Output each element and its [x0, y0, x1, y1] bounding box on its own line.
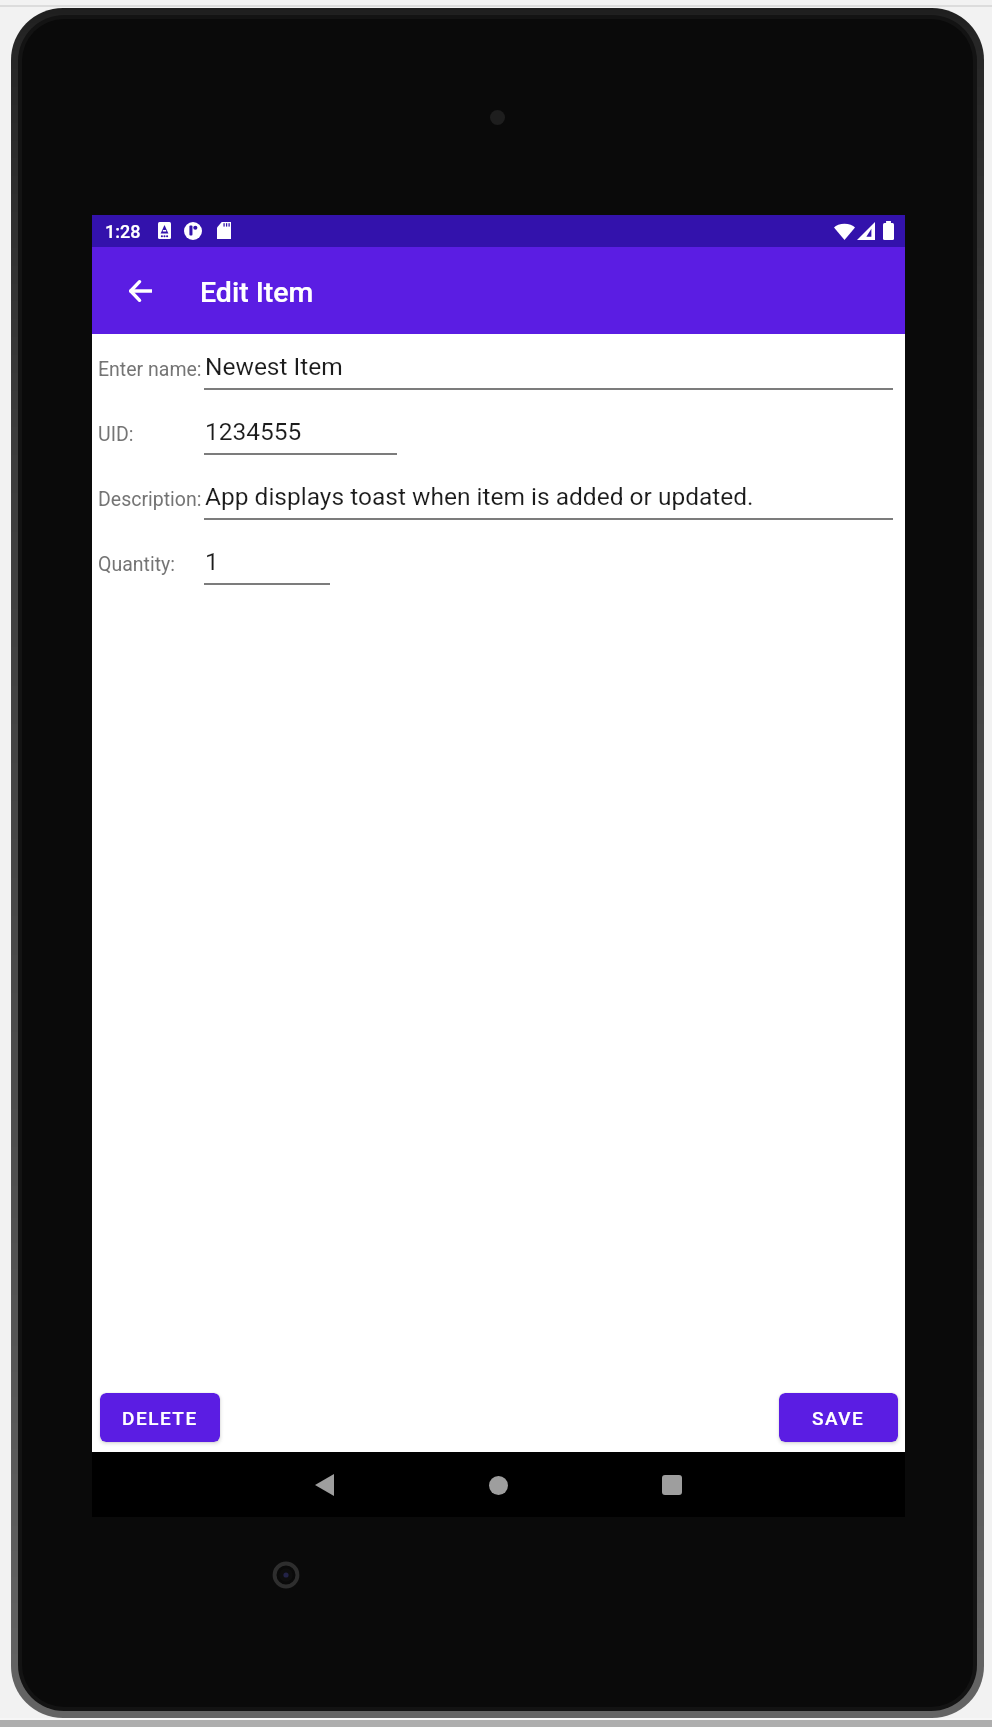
staticText: Description: — [98, 488, 202, 511]
staticText: 1234555 — [205, 417, 302, 446]
button[interactable]: Newest Item — [204, 348, 893, 390]
button[interactable]: Recent apps — [644, 1457, 700, 1513]
button[interactable]: Back — [296, 1457, 352, 1513]
staticText: SAVE — [812, 1407, 865, 1429]
button[interactable]: 1234555 — [204, 413, 397, 455]
button[interactable]: Home — [470, 1457, 526, 1513]
button[interactable]: Back — [116, 267, 164, 315]
staticText: App displays toast when item is added or… — [205, 482, 754, 511]
staticText: UID: — [98, 423, 134, 446]
button[interactable]: SAVE — [779, 1393, 898, 1442]
staticText: 1 — [205, 547, 219, 576]
staticText: Newest Item — [205, 352, 343, 381]
staticText: 1:28 — [105, 221, 141, 242]
staticText: Quantity: — [98, 553, 175, 576]
button[interactable]: App displays toast when item is added or… — [204, 478, 893, 520]
button[interactable]: 1 — [204, 543, 330, 585]
staticText: Edit Item — [200, 276, 314, 309]
button[interactable]: DELETE — [100, 1393, 220, 1442]
staticText: DELETE — [122, 1407, 198, 1429]
staticText: Enter name: — [98, 358, 202, 381]
